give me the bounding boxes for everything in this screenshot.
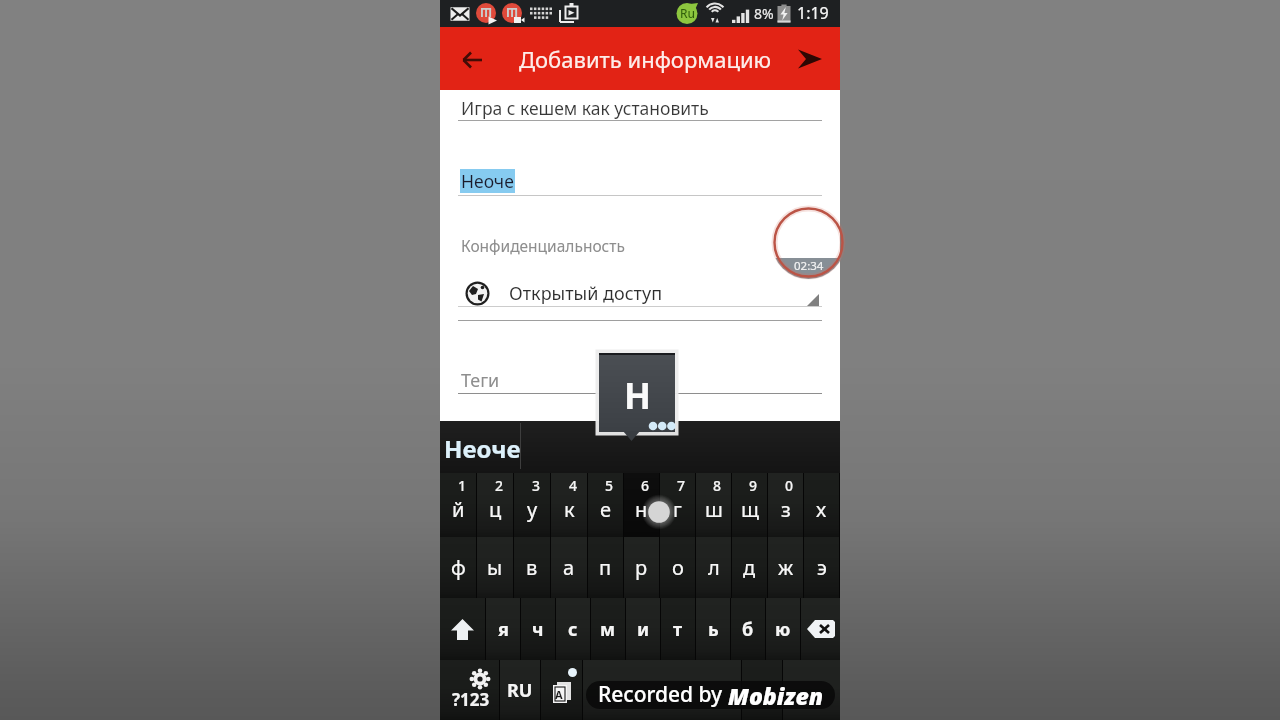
button[interactable]: 3	[514, 473, 550, 537]
staticText: й	[452, 496, 465, 523]
button[interactable]: м	[591, 598, 625, 660]
button[interactable]: 4	[551, 473, 587, 537]
button[interactable]: х	[804, 473, 839, 537]
staticText: т	[673, 617, 683, 642]
button[interactable]: 5	[588, 473, 623, 537]
staticText: Теги	[461, 368, 500, 393]
button[interactable]	[783, 660, 840, 720]
staticText: ж	[778, 554, 794, 581]
button[interactable]: 2	[477, 473, 513, 537]
staticText: е	[600, 496, 612, 523]
staticText: Добавить информацию	[519, 44, 772, 74]
staticText: х	[816, 496, 827, 523]
button[interactable]: ф	[440, 537, 476, 598]
staticText: 02:34	[794, 258, 824, 274]
button[interactable]: о	[660, 537, 695, 598]
button[interactable]: Recording timer 02:34	[772, 206, 845, 279]
staticText: 7	[677, 476, 686, 495]
button[interactable]: я	[486, 598, 520, 660]
staticText: 3	[532, 476, 541, 495]
button[interactable]: б	[731, 598, 765, 660]
button[interactable]: Неоче	[440, 421, 520, 473]
staticText: э	[817, 554, 827, 581]
staticText: с	[568, 617, 578, 642]
staticText: Mobizen	[728, 681, 824, 708]
button[interactable]: л	[696, 537, 731, 598]
staticText: ч	[532, 617, 544, 642]
staticText: 5	[605, 476, 614, 495]
staticText: п	[599, 554, 612, 581]
staticText: ?123	[452, 688, 490, 711]
staticText: 1	[458, 476, 467, 495]
button[interactable]: а	[551, 537, 587, 598]
staticText: р	[635, 554, 648, 581]
staticText: г	[673, 496, 682, 523]
button[interactable]: Теги	[458, 367, 822, 393]
staticText: к	[564, 496, 575, 523]
button[interactable]: в	[514, 537, 550, 598]
button[interactable]: 1	[440, 473, 476, 537]
staticText: и	[637, 617, 650, 642]
staticText: щ	[741, 496, 759, 523]
staticText: ю	[775, 617, 791, 642]
button[interactable]: 0	[768, 473, 803, 537]
staticText: д	[743, 554, 756, 581]
staticText: а	[563, 554, 575, 581]
staticText: Игра с кешем как установить	[461, 96, 709, 120]
staticText: RU	[507, 678, 533, 703]
button[interactable]: 7	[660, 473, 695, 537]
button[interactable]: Back	[448, 35, 496, 83]
button[interactable]	[801, 598, 840, 660]
button[interactable]: ч	[521, 598, 555, 660]
button[interactable]: Send	[786, 35, 834, 83]
staticText: л	[708, 554, 720, 581]
button[interactable]: ь	[696, 598, 730, 660]
staticText: з	[781, 496, 791, 523]
button[interactable]: 9	[732, 473, 767, 537]
button[interactable]: с	[556, 598, 590, 660]
button[interactable]: д	[732, 537, 767, 598]
staticText: б	[742, 617, 754, 642]
button[interactable]: э	[804, 537, 839, 598]
staticText: м	[600, 617, 616, 642]
staticText: о	[672, 554, 684, 581]
button[interactable]: ?123	[440, 660, 499, 720]
staticText: 1:19	[797, 2, 829, 24]
staticText: Ru	[680, 5, 696, 21]
staticText: ц	[489, 496, 502, 523]
staticText: н	[635, 496, 648, 523]
button[interactable]	[440, 598, 485, 660]
staticText: Неоче	[461, 169, 514, 193]
button[interactable]: ю	[766, 598, 800, 660]
staticText: 6	[641, 476, 650, 495]
staticText: 4	[569, 476, 578, 495]
staticText: Н	[624, 372, 651, 420]
button[interactable]: т	[661, 598, 695, 660]
staticText: Конфиденциальность	[461, 235, 625, 255]
staticText: я	[498, 617, 509, 642]
staticText: 8%	[754, 4, 774, 23]
button[interactable]	[742, 660, 782, 720]
staticText: 9	[749, 476, 758, 495]
button[interactable]: RU	[500, 660, 540, 720]
button[interactable]: A	[541, 660, 582, 720]
button[interactable]: Неоче	[460, 169, 515, 193]
staticText: Открытый доступ	[509, 281, 663, 306]
button[interactable]: ж	[768, 537, 803, 598]
button[interactable]: 8	[696, 473, 731, 537]
button[interactable]: р	[624, 537, 659, 598]
staticText: у	[527, 496, 538, 523]
button[interactable]: Игра с кешем как установить	[458, 93, 822, 123]
staticText: A	[555, 687, 563, 702]
button[interactable]: 6	[624, 473, 659, 537]
staticText: 8	[713, 476, 722, 495]
staticText: 0	[785, 476, 794, 495]
button[interactable]: Открытый доступ	[458, 274, 822, 312]
button[interactable]: п	[588, 537, 623, 598]
button[interactable]	[583, 660, 741, 720]
staticText: 2	[495, 476, 504, 495]
button[interactable]: и	[626, 598, 660, 660]
staticText: в	[526, 554, 538, 581]
staticText: Recorded by	[598, 681, 728, 708]
button[interactable]: ы	[477, 537, 513, 598]
